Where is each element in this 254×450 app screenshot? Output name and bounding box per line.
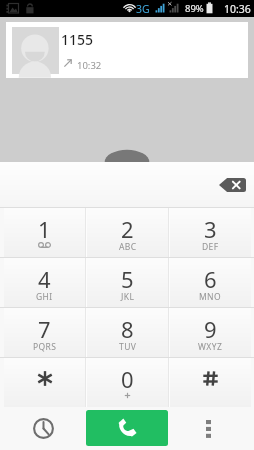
- button[interactable]: 7: [4, 308, 85, 357]
- button[interactable]: 1: [4, 208, 85, 257]
- staticText: 10:36: [224, 2, 251, 16]
- staticText: 0: [121, 364, 134, 394]
- button[interactable]: 1155: [6, 22, 248, 78]
- button[interactable]: More options: [168, 407, 254, 450]
- button[interactable]: 9: [170, 308, 251, 357]
- staticText: 8: [121, 314, 134, 344]
- staticText: MNO: [199, 291, 222, 303]
- staticText: 6: [204, 264, 217, 294]
- staticText: TUV: [119, 341, 137, 353]
- button[interactable]: 0: [87, 358, 168, 407]
- staticText: 7: [38, 314, 51, 344]
- button[interactable]: 8: [87, 308, 168, 357]
- button[interactable]: 5: [87, 258, 168, 307]
- staticText: GHI: [36, 291, 53, 303]
- staticText: 9: [204, 314, 217, 344]
- button[interactable]: 4: [4, 258, 85, 307]
- button[interactable]: [170, 358, 251, 407]
- button[interactable]: Call: [86, 410, 168, 446]
- staticText: 89%: [185, 2, 204, 15]
- staticText: 5: [121, 264, 134, 294]
- staticText: 1: [38, 214, 51, 244]
- button[interactable]: [4, 358, 85, 407]
- staticText: DEF: [202, 241, 219, 253]
- button[interactable]: Call history: [0, 407, 86, 450]
- staticText: 2: [121, 214, 134, 244]
- button[interactable]: 2: [87, 208, 168, 257]
- button[interactable]: 6: [170, 258, 251, 307]
- staticText: 3: [204, 214, 217, 244]
- staticText: ABC: [119, 241, 137, 253]
- staticText: 4: [38, 264, 51, 294]
- staticText: 1155: [61, 30, 94, 49]
- staticText: WXYZ: [198, 341, 223, 353]
- button[interactable]: 3: [170, 208, 251, 257]
- staticText: JKL: [121, 291, 135, 303]
- staticText: PQRS: [33, 341, 57, 353]
- staticText: 3G: [136, 2, 150, 16]
- button[interactable]: Delete: [219, 178, 246, 192]
- staticText: 10:32: [77, 59, 102, 72]
